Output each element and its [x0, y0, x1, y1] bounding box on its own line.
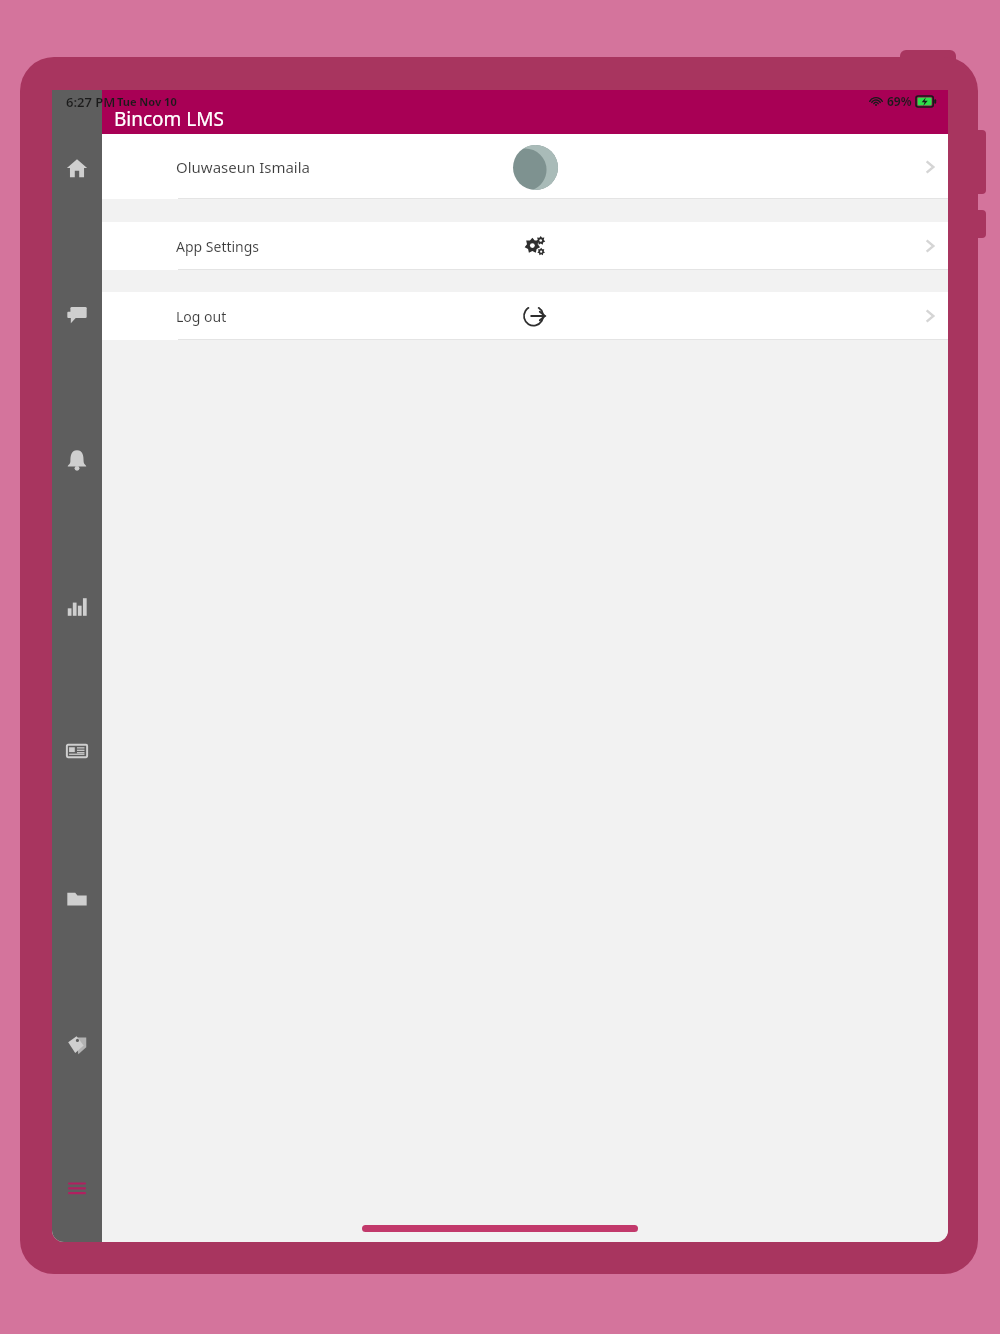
button[interactable]: Statistics [63, 593, 91, 621]
staticText: 6:27 PM [66, 93, 116, 111]
staticText: 69% [887, 93, 912, 109]
staticText: Tue Nov 10 [117, 94, 177, 109]
button[interactable]: Menu [65, 1176, 89, 1200]
button[interactable]: Tags [63, 1031, 91, 1059]
button[interactable]: Notifications [63, 446, 91, 474]
button[interactable]: Messages [63, 300, 91, 328]
staticText: Log out [176, 307, 227, 326]
button[interactable]: Home [63, 154, 91, 182]
staticText: Oluwaseun Ismaila [176, 157, 311, 177]
button[interactable]: App Settings [102, 222, 948, 270]
staticText: App Settings [176, 237, 260, 256]
staticText: Bincom LMS [114, 106, 224, 132]
button[interactable]: Oluwaseun Ismaila [102, 134, 948, 199]
button[interactable]: Files [63, 885, 91, 913]
button[interactable]: Log out [102, 292, 948, 340]
button[interactable]: News [63, 737, 91, 765]
